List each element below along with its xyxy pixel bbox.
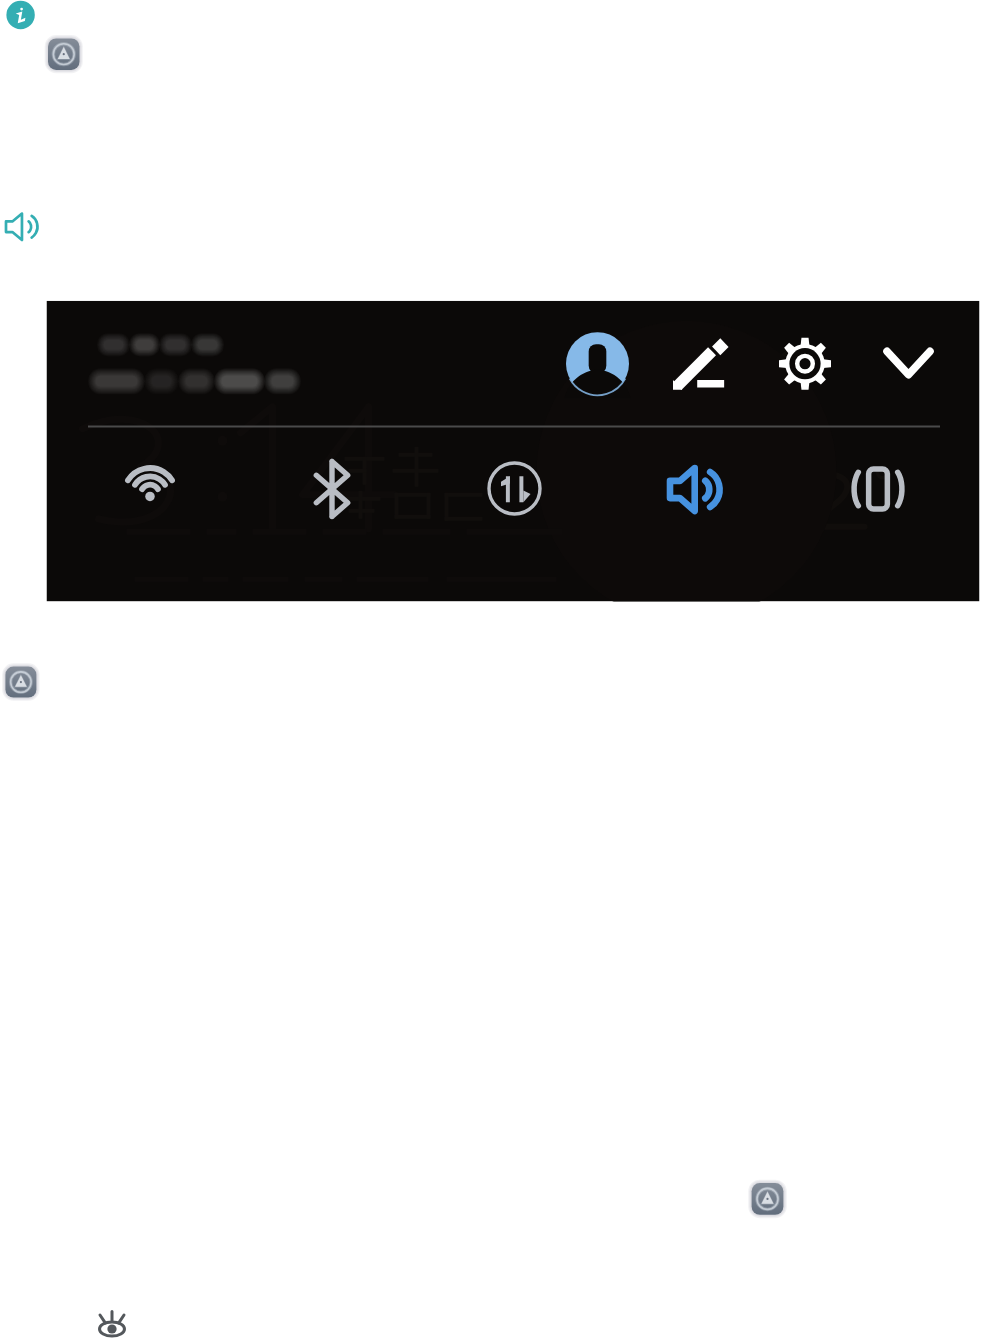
button[interactable]: App icon (751, 1183, 783, 1215)
button[interactable]: Bluetooth (304, 462, 360, 516)
button[interactable]: Views (100, 1314, 124, 1337)
button[interactable]: Profile (566, 332, 629, 395)
button[interactable]: App icon (48, 38, 80, 70)
button[interactable]: Settings (779, 337, 832, 390)
button[interactable]: Sound (668, 462, 724, 516)
button[interactable]: Volume (5, 213, 40, 240)
button[interactable]: Edit (673, 336, 728, 391)
button[interactable]: Information (6, 1, 35, 30)
button[interactable]: Expand (885, 340, 932, 385)
button[interactable]: App icon (5, 666, 36, 697)
button[interactable]: Wi-Fi (122, 462, 178, 516)
button[interactable]: Vibrate (850, 462, 906, 516)
button[interactable]: Mobile data (486, 461, 542, 516)
